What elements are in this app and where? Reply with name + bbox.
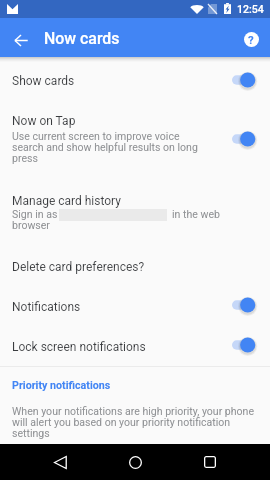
staticText: Lock screen notifications [12,340,270,354]
button[interactable]: Help [237,25,265,53]
staticText: Notifications [12,300,270,314]
button[interactable] [0,287,270,325]
staticText: Show cards [12,74,270,88]
staticText: 12:54 [237,3,264,15]
staticText: Sign in as [12,208,58,220]
button[interactable]: Toggle [232,295,260,315]
button[interactable] [0,183,270,238]
button[interactable] [0,248,270,286]
staticText: Manage card history [12,194,270,208]
staticText: Now cards [44,29,120,48]
button[interactable]: Home [113,446,157,478]
staticText: Now on Tap [12,114,270,128]
staticText: browser [12,219,50,231]
button[interactable]: Toggle [232,335,260,355]
staticText: Priority notifications [12,379,270,392]
button[interactable]: Navigate up [2,21,40,59]
button[interactable] [0,62,270,100]
button[interactable]: Toggle [232,129,260,149]
button[interactable] [0,103,270,171]
button[interactable] [0,328,270,366]
staticText: Use current screen to improve voice sear… [12,130,202,164]
staticText: When your notifications are high priorit… [12,405,255,439]
staticText: in the web [172,208,220,220]
staticText: Delete card preferences? [12,260,270,274]
button[interactable]: Recent apps [188,446,232,478]
button[interactable]: Toggle [232,70,260,90]
button[interactable]: Back [38,446,82,478]
staticText: ? [248,33,254,46]
